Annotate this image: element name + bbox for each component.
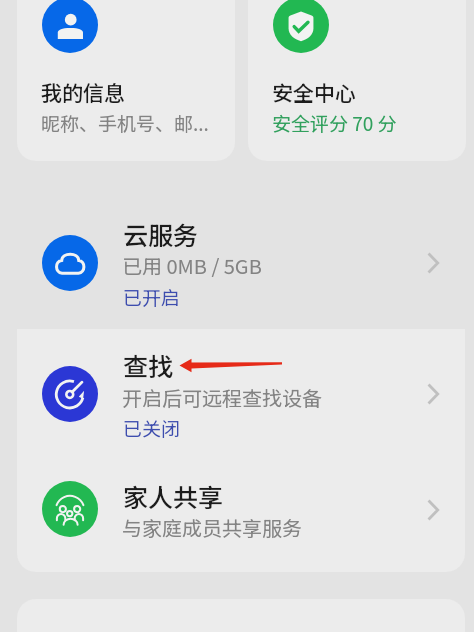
staticText: 已关闭 (123, 414, 181, 442)
button[interactable] (17, 198, 465, 329)
other: Annotation arrow (0, 0, 474, 632)
button[interactable] (17, 0, 235, 161)
staticText: 家人共享 (123, 478, 224, 514)
button[interactable] (17, 329, 465, 458)
staticText: 查找 (123, 347, 174, 383)
button[interactable] (17, 458, 465, 572)
staticText: 与家庭成员共享服务 (122, 513, 302, 542)
button[interactable] (248, 0, 466, 161)
staticText: 已开启 (123, 283, 181, 311)
staticText: 安全中心 (272, 77, 356, 107)
staticText: 云服务 (123, 216, 199, 252)
staticText: 开启后可远程查找设备 (122, 383, 322, 412)
staticText: 昵称、手机号、邮... (41, 109, 209, 137)
staticText: 安全评分 70 分 (272, 109, 397, 137)
staticText: 我的信息 (41, 77, 125, 107)
staticText: 已用 0MB / 5GB (122, 251, 262, 280)
